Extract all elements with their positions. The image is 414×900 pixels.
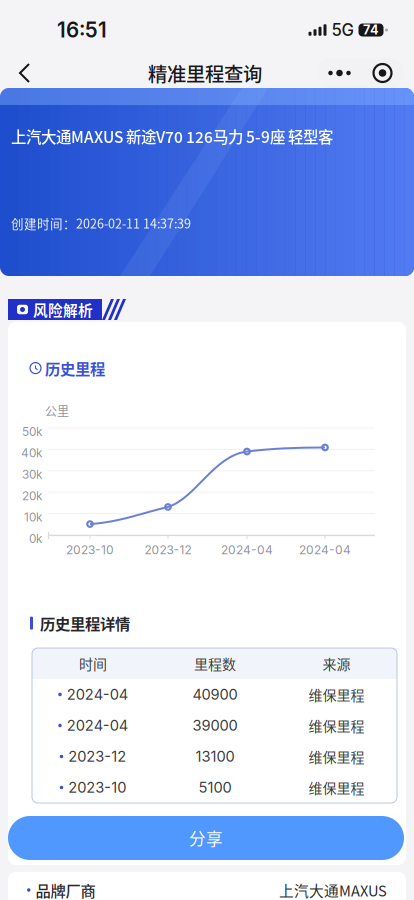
staticText: 2023-12 bbox=[144, 543, 191, 557]
staticText: 0k bbox=[29, 532, 42, 546]
staticText: 时间 bbox=[79, 653, 107, 674]
staticText: 5G bbox=[331, 20, 353, 40]
staticText: 风险解析 bbox=[33, 299, 93, 320]
staticText: 维保里程 bbox=[308, 777, 364, 798]
staticText: 2024-04 bbox=[221, 543, 273, 557]
staticText: 2023-10 bbox=[66, 543, 114, 557]
staticText: 2024-04 bbox=[299, 543, 351, 557]
staticText: 里程数 bbox=[194, 653, 236, 674]
staticText: 13100 bbox=[195, 748, 234, 765]
staticText: 30k bbox=[22, 467, 42, 482]
staticText: 精准里程查询 bbox=[148, 59, 262, 87]
staticText: 10k bbox=[24, 510, 42, 524]
staticText: 公里 bbox=[45, 402, 69, 419]
staticText: 历史里程 bbox=[45, 357, 105, 379]
staticText: 维保里程 bbox=[308, 715, 364, 736]
staticText: 2023-10 bbox=[68, 779, 126, 796]
staticText: 2023-12 bbox=[68, 748, 126, 765]
staticText: 维保里程 bbox=[308, 684, 364, 705]
button[interactable]: Back bbox=[6, 51, 50, 95]
staticText: 历史里程详情 bbox=[40, 612, 130, 634]
button[interactable]: More options bbox=[318, 57, 361, 88]
staticText: 来源 bbox=[322, 653, 350, 674]
staticText: 上汽大通MAXUS 新途V70 126马力 5-9座 轻型客 bbox=[11, 125, 333, 147]
staticText: 上汽大通MAXUS bbox=[279, 879, 387, 900]
staticText: 16:51 bbox=[57, 17, 107, 42]
button[interactable]: 分享 bbox=[8, 816, 404, 860]
staticText: 5100 bbox=[198, 779, 231, 796]
button[interactable]: Close mini program bbox=[361, 57, 404, 88]
staticText: 2024-04 bbox=[67, 717, 128, 734]
staticText: 维保里程 bbox=[308, 746, 364, 767]
staticText: 品牌厂商 bbox=[35, 879, 95, 900]
staticText: 40900 bbox=[192, 686, 237, 703]
staticText: 2024-04 bbox=[67, 686, 128, 703]
staticText: 40k bbox=[21, 446, 42, 460]
staticText: 39000 bbox=[192, 717, 237, 734]
staticText: 74 bbox=[363, 22, 379, 38]
staticText: 20k bbox=[22, 489, 42, 503]
staticText: 50k bbox=[22, 425, 42, 439]
staticText: 分享 bbox=[189, 826, 223, 850]
staticText: 创建时间：2026-02-11 14:37:39 bbox=[11, 214, 191, 232]
